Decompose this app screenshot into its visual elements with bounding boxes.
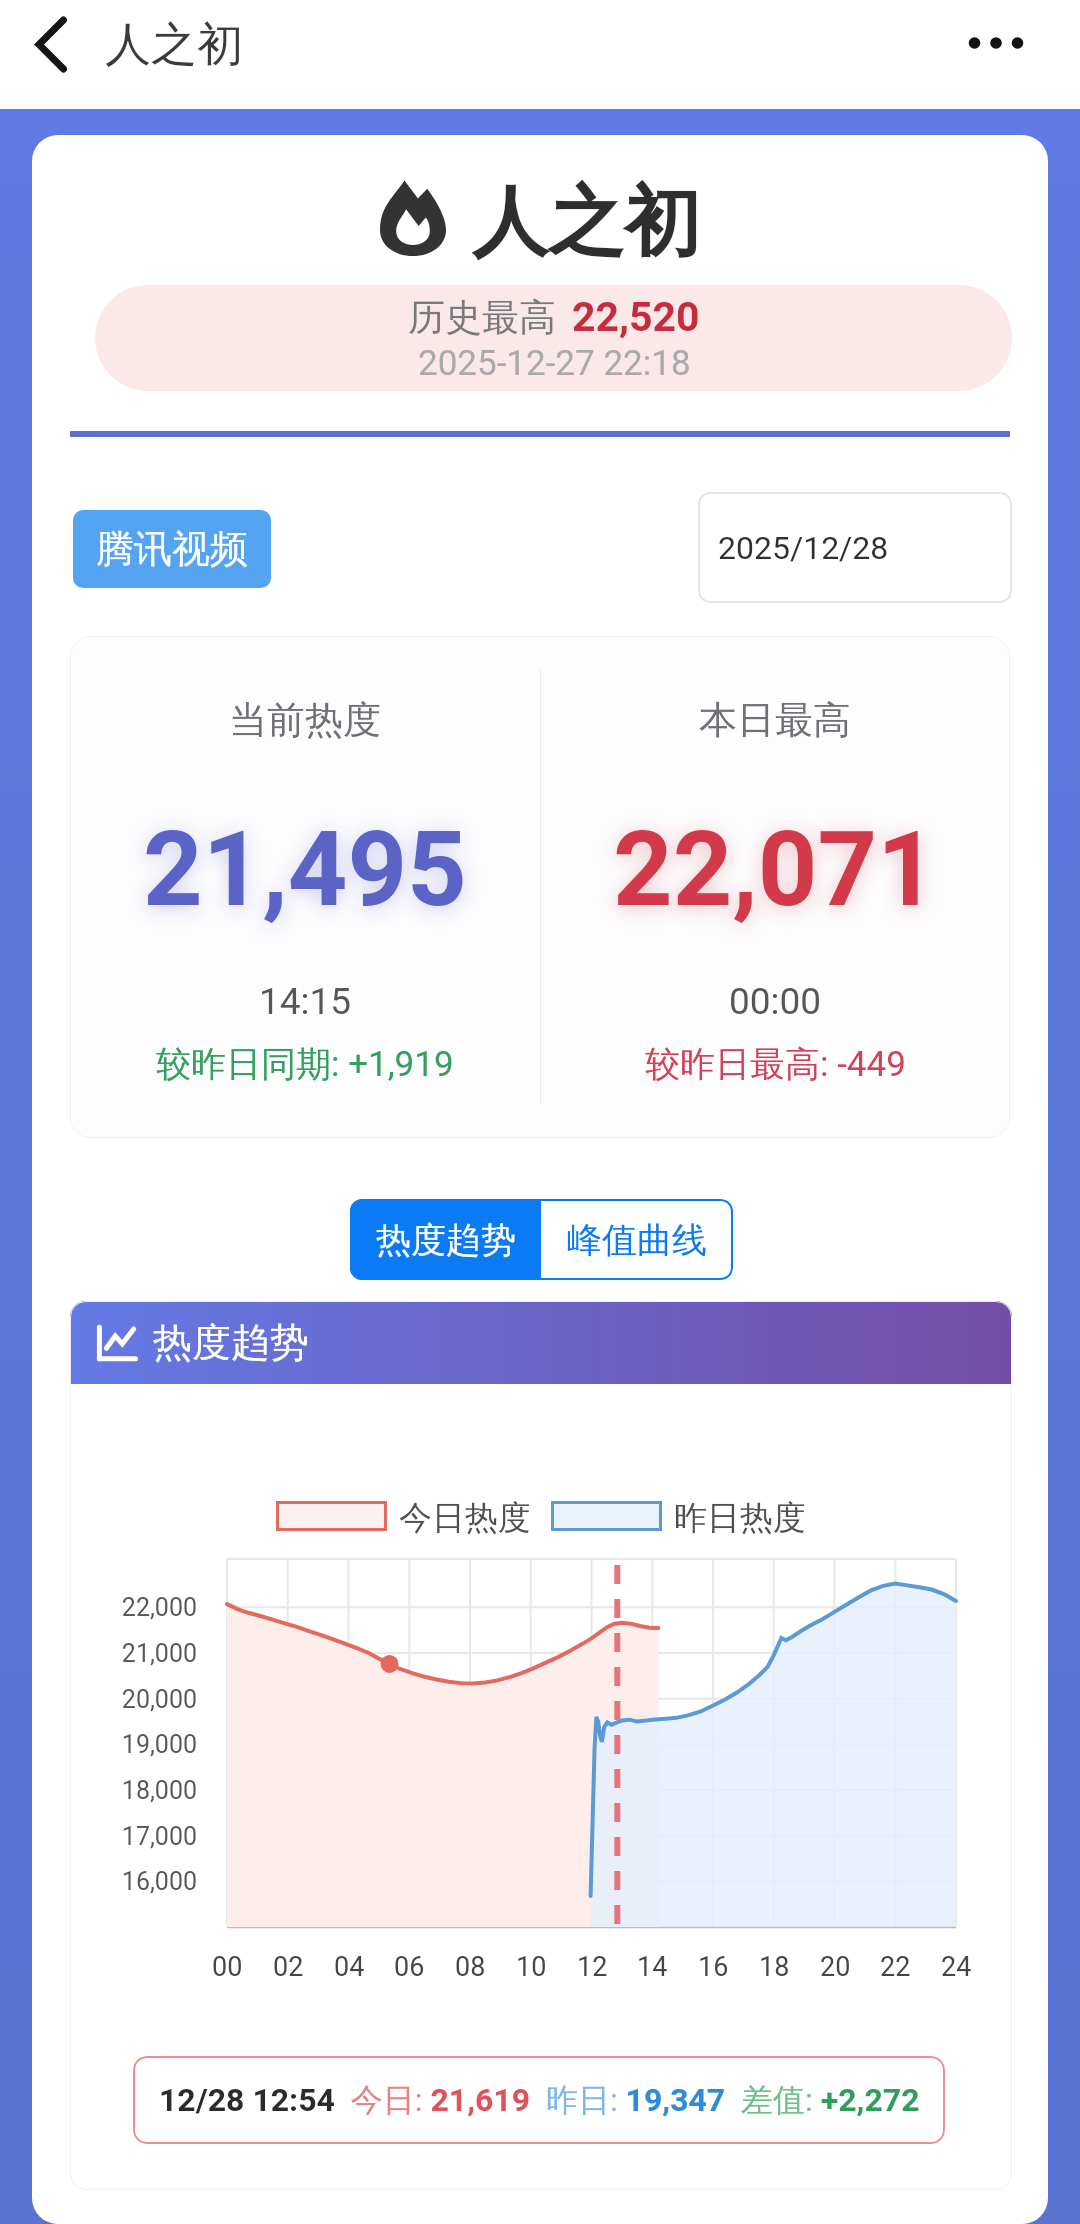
staticText: 当前热度 bbox=[229, 696, 381, 744]
staticText: 22 bbox=[880, 1951, 911, 1983]
staticText: 16 bbox=[698, 1951, 729, 1983]
button[interactable]: 本日最高 bbox=[540, 636, 1010, 1138]
staticText: 昨日热度 bbox=[674, 1497, 806, 1535]
staticText: 20,000 bbox=[121, 1685, 197, 1714]
staticText: 本日最高 bbox=[699, 696, 851, 744]
staticText: 14 bbox=[637, 1951, 668, 1983]
staticText: 人之初 bbox=[105, 16, 243, 74]
button[interactable]: Back bbox=[16, 20, 86, 88]
staticText: 17,000 bbox=[121, 1822, 197, 1851]
staticText: 24 bbox=[941, 1951, 972, 1983]
staticText: 21,495 bbox=[143, 809, 467, 931]
staticText: 2025-12-27 22:18 bbox=[418, 343, 691, 384]
staticText: 22,000 bbox=[121, 1593, 197, 1622]
button[interactable]: 当前热度 bbox=[70, 636, 540, 1138]
staticText: 今日热度 bbox=[399, 1497, 531, 1535]
button[interactable]: 历史最高 bbox=[95, 285, 1012, 391]
staticText: 腾讯视频 bbox=[96, 525, 248, 573]
staticText: 18,000 bbox=[121, 1776, 197, 1805]
staticText: 18 bbox=[759, 1951, 790, 1983]
staticText: 00 bbox=[212, 1951, 243, 1983]
button[interactable]: 峰值曲线 bbox=[541, 1199, 733, 1280]
staticText: 峰值曲线 bbox=[567, 1218, 707, 1262]
staticText: 22,520 bbox=[572, 293, 700, 341]
staticText: 人之初 bbox=[472, 175, 700, 261]
staticText: 16,000 bbox=[121, 1867, 197, 1896]
staticText: 较昨日最高: -449 bbox=[645, 1042, 906, 1086]
staticText: 04 bbox=[334, 1951, 365, 1983]
staticText: 12 bbox=[577, 1951, 608, 1983]
staticText: 2025/12/28 bbox=[718, 529, 889, 567]
staticText: 热度趋势 bbox=[153, 1318, 309, 1367]
button[interactable]: 12/28 12:54 今日: 21,619 昨日: 19,347 差值: +2… bbox=[133, 2056, 945, 2144]
button[interactable]: 热度趋势 bbox=[350, 1199, 541, 1280]
staticText: 22,071 bbox=[613, 809, 937, 931]
staticText: 历史最高 bbox=[408, 294, 556, 341]
staticText: 06 bbox=[394, 1951, 425, 1983]
staticText: 12/28 12:54 今日: 21,619 昨日: 19,347 差值: +2… bbox=[159, 2080, 920, 2120]
staticText: 00:00 bbox=[729, 980, 822, 1023]
button[interactable]: 2025/12/28 bbox=[698, 492, 1012, 603]
staticText: 02 bbox=[273, 1951, 304, 1983]
staticText: 14:15 bbox=[259, 980, 352, 1023]
button[interactable]: 腾讯视频 bbox=[73, 510, 271, 588]
staticText: 20 bbox=[820, 1951, 851, 1983]
staticText: 21,000 bbox=[121, 1639, 197, 1668]
staticText: 较昨日同期: +1,919 bbox=[156, 1042, 454, 1086]
staticText: 热度趋势 bbox=[376, 1218, 516, 1262]
staticText: 08 bbox=[455, 1951, 486, 1983]
button[interactable]: More options bbox=[952, 13, 1038, 73]
staticText: 10 bbox=[516, 1951, 547, 1983]
staticText: 19,000 bbox=[121, 1730, 197, 1759]
